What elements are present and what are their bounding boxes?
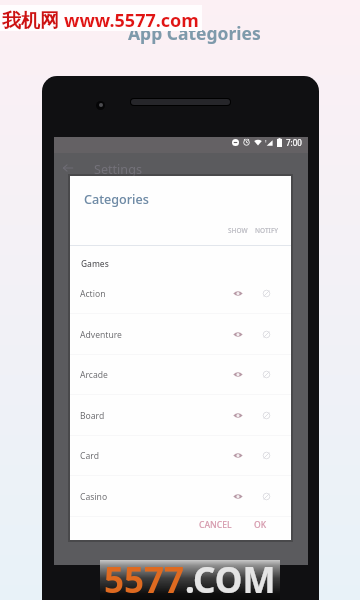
staticText: Categories bbox=[84, 191, 149, 208]
button[interactable]: Notify Board bbox=[258, 407, 275, 424]
button[interactable]: Adventure bbox=[70, 314, 291, 355]
button[interactable]: Arcade bbox=[70, 354, 291, 395]
staticText: Adventure bbox=[80, 329, 122, 341]
staticText: Settings bbox=[94, 161, 142, 178]
button[interactable]: Show Arcade bbox=[229, 366, 246, 383]
button[interactable]: Casino bbox=[70, 476, 291, 517]
button[interactable]: CANCEL bbox=[194, 515, 236, 535]
button[interactable]: Show Casino bbox=[229, 488, 246, 505]
staticText: Board bbox=[80, 410, 105, 422]
button[interactable]: Show Card bbox=[229, 447, 246, 464]
staticText: Casino bbox=[80, 491, 108, 503]
button[interactable]: Show Adventure bbox=[229, 326, 246, 343]
staticText: www.5577.com bbox=[64, 8, 199, 33]
other: Back bbox=[62, 162, 74, 174]
button[interactable]: Board bbox=[70, 395, 291, 436]
button[interactable]: Show Board bbox=[229, 407, 246, 424]
button[interactable]: Notify Card bbox=[258, 447, 275, 464]
button[interactable]: Action bbox=[70, 273, 291, 314]
staticText: Games bbox=[81, 258, 109, 269]
button[interactable]: Show Action bbox=[229, 285, 246, 302]
staticText: .COM bbox=[185, 556, 276, 596]
staticText: 7:00 bbox=[286, 137, 302, 148]
staticText: 5577 bbox=[104, 556, 185, 596]
button[interactable]: Back bbox=[54, 153, 308, 183]
button[interactable]: OK bbox=[245, 515, 275, 535]
staticText: Card bbox=[80, 450, 99, 462]
staticText: NOTIFY bbox=[255, 226, 279, 235]
staticText: SHOW bbox=[228, 226, 248, 235]
button[interactable]: Notify Action bbox=[258, 285, 275, 302]
button[interactable]: Notify Casino bbox=[258, 488, 275, 505]
staticText: 我机网 bbox=[2, 7, 64, 33]
staticText: OK bbox=[254, 519, 267, 531]
staticText: Arcade bbox=[80, 369, 108, 381]
staticText: App Categories bbox=[128, 21, 261, 45]
staticText: CANCEL bbox=[199, 519, 232, 531]
button[interactable]: Notify Adventure bbox=[258, 326, 275, 343]
button[interactable]: Card bbox=[70, 435, 291, 476]
button[interactable]: Notify Arcade bbox=[258, 366, 275, 383]
staticText: Action bbox=[80, 288, 106, 300]
